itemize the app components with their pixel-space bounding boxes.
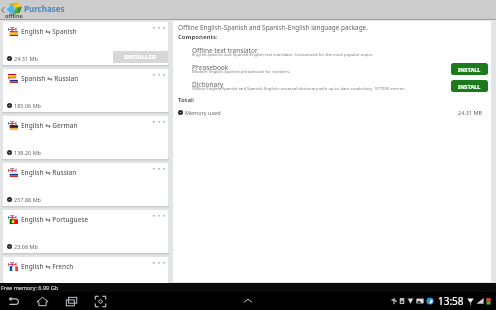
staticText: Free memory: 6.99 Gb: [1, 284, 59, 291]
button[interactable]: English ⇆ German: [3, 116, 168, 159]
button[interactable]: More options: [152, 69, 168, 81]
staticText: 185.06 Mb: [14, 102, 42, 109]
staticText: English ⇆ French: [21, 262, 74, 271]
staticText: 138.20 Mb: [14, 149, 42, 156]
button[interactable]: INSTALLED: [113, 51, 168, 63]
staticText: Offline text translator: [192, 46, 258, 55]
staticText: Dictionary: [192, 80, 224, 89]
button[interactable]: More options: [152, 116, 168, 128]
staticText: 24.31 MB: [458, 109, 483, 116]
staticText: Phrasebook: [192, 63, 229, 72]
button[interactable]: More options: [152, 22, 168, 34]
staticText: 257.88 Mb: [14, 196, 42, 203]
staticText: 13:58: [438, 294, 464, 308]
button[interactable]: Navigate up: [0, 0, 22, 20]
staticText: Total:: [178, 96, 195, 104]
staticText: INSTALLED: [124, 53, 157, 61]
staticText: Components:: [178, 33, 218, 41]
button[interactable]: More options: [152, 163, 168, 175]
button[interactable]: Spanish ⇆ Russian: [3, 69, 168, 112]
staticText: INSTALL: [458, 83, 481, 90]
button[interactable]: English ⇆ Russian: [3, 163, 168, 206]
button[interactable]: Expand: [238, 292, 258, 310]
staticText: English ⇆ Portuguese: [21, 215, 89, 224]
staticText: Spanish ⇆ Russian: [21, 74, 79, 83]
button[interactable]: Screenshot: [89, 292, 111, 310]
button[interactable]: INSTALL: [451, 80, 488, 92]
staticText: Purchases: [24, 3, 65, 14]
staticText: 24.31 Mb: [14, 55, 38, 62]
staticText: English ⇆ German: [21, 121, 78, 130]
staticText: Offline English-Spanish and Spanish-Engl…: [192, 86, 406, 92]
staticText: Offline English-Spanish and Spanish-Engl…: [178, 23, 368, 32]
button[interactable]: INSTALL: [451, 63, 488, 75]
staticText: English ⇆ Spanish: [21, 27, 77, 36]
button[interactable]: More options: [152, 210, 168, 222]
staticText: offline: [5, 12, 23, 19]
button[interactable]: English ⇆ Spanish: [3, 22, 168, 65]
staticText: English ⇆ Russian: [21, 168, 77, 177]
button[interactable]: English ⇆ French: [3, 257, 168, 283]
button[interactable]: Back: [2, 292, 24, 310]
staticText: Memory used: [185, 109, 221, 116]
staticText: INSTALL: [458, 66, 481, 73]
button[interactable]: English ⇆ Portuguese: [3, 210, 168, 253]
staticText: 23.08 Mb: [14, 243, 38, 250]
button[interactable]: More options: [152, 257, 168, 269]
staticText: English-Spanish and Spanish-English text…: [192, 52, 374, 58]
button[interactable]: Recent apps: [60, 292, 82, 310]
button[interactable]: Home: [31, 292, 53, 310]
staticText: Modern English-Spanish phrasebook for tr…: [192, 69, 291, 75]
